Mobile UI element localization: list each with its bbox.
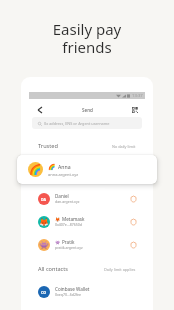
staticText: 🌈 (48, 163, 56, 170)
staticText: 0x address, ENS or Argent username (44, 121, 110, 126)
button[interactable]: 🌈 (38, 166, 136, 186)
staticText: Easily pay friends (0, 19, 174, 57)
button[interactable]: Scan QR code (129, 104, 141, 116)
staticText: 🌈 (29, 164, 42, 176)
staticText: anna.argent.xyz (48, 172, 79, 177)
staticText: 🦊 (39, 218, 49, 227)
staticText: pratik.argent.xyz (55, 245, 83, 250)
staticText: Anna (62, 170, 74, 176)
staticText: No daily limit (112, 144, 136, 149)
staticText: 13:37 (132, 93, 143, 99)
button[interactable]: 🌈 (17, 155, 157, 184)
button[interactable]: CO (38, 282, 136, 302)
staticText: Daily limit applies (104, 267, 136, 272)
button[interactable]: 0x address, ENS or Argent username (32, 117, 142, 129)
staticText: Send (82, 107, 93, 113)
staticText: Trusted (38, 142, 58, 150)
staticText: 👾 (55, 240, 61, 245)
staticText: dan.argent.xyz (55, 199, 80, 204)
button[interactable]: DA (38, 189, 136, 209)
button[interactable]: 🦊 (38, 212, 136, 232)
staticText: All contacts (38, 265, 68, 273)
staticText: Metamask (62, 216, 85, 222)
staticText: Coinbase Wallet (55, 286, 90, 292)
staticText: Pratik (62, 239, 75, 245)
staticText: Daniel (55, 193, 69, 199)
staticText: DA (41, 197, 47, 202)
staticText: Anna (58, 163, 71, 170)
staticText: 0x407e...87650d (55, 222, 82, 227)
button[interactable]: Back (34, 104, 46, 116)
staticText: 0xeq70...6d2fee (55, 292, 82, 297)
staticText: 🌈 (55, 171, 61, 176)
staticText: anna.argent.xyz (55, 176, 82, 181)
staticText: 👾 (39, 241, 49, 250)
staticText: 🦊 (55, 217, 61, 222)
staticText: 🌈 (39, 172, 49, 181)
staticText: CO (41, 290, 47, 295)
button[interactable]: 👾 (38, 235, 136, 255)
